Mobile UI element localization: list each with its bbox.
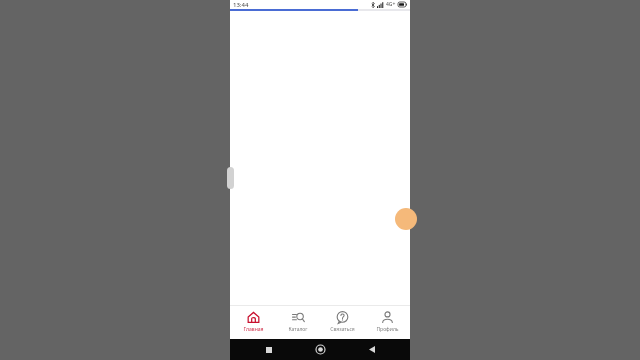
button[interactable]: Home: [307, 339, 333, 360]
button[interactable]: Back: [359, 339, 385, 360]
button[interactable]: Recent apps: [256, 339, 282, 360]
button[interactable]: Связаться: [320, 306, 364, 339]
button[interactable]: Assistant: [395, 208, 417, 230]
staticText: Профиль: [376, 326, 399, 333]
staticText: 13:44: [233, 1, 249, 9]
staticText: 4G+: [386, 1, 396, 8]
staticText: Каталог: [288, 326, 308, 333]
button[interactable]: Главная: [231, 306, 275, 339]
staticText: Связаться: [330, 326, 355, 333]
staticText: Главная: [243, 326, 264, 333]
button[interactable]: Каталог: [276, 306, 320, 339]
button[interactable]: Open drawer: [227, 167, 234, 189]
button[interactable]: Профиль: [365, 306, 409, 339]
